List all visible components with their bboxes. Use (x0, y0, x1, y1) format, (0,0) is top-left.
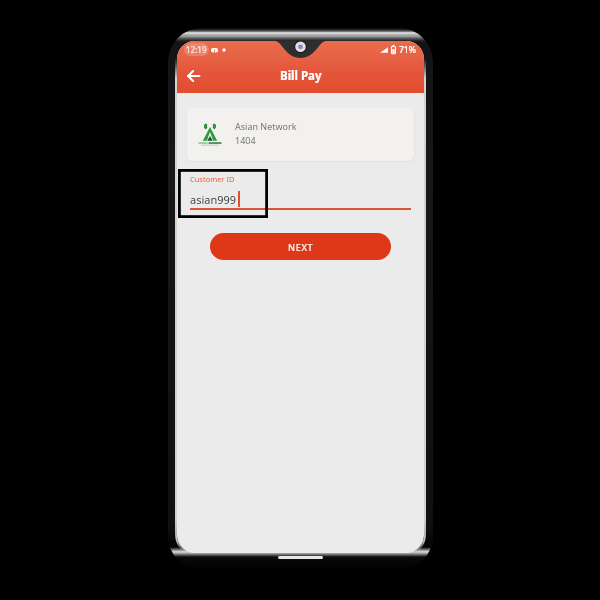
staticText: NEXT (288, 241, 314, 253)
staticText: asian999 (190, 192, 237, 207)
button[interactable]: NEXT (210, 233, 391, 260)
staticText: Customer ID (190, 174, 235, 184)
button[interactable]: Asian Network (187, 108, 414, 161)
button[interactable]: Customer ID (190, 174, 411, 210)
staticText: Bill Pay (280, 68, 322, 84)
staticText: 71% (399, 44, 416, 56)
staticText: 1404 (235, 134, 256, 146)
button[interactable]: Back (178, 61, 208, 91)
staticText: Asian Network (235, 120, 297, 132)
staticText: 12:19 (186, 44, 207, 55)
